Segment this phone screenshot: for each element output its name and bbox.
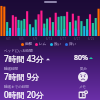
staticText: 80% xyxy=(74,53,88,63)
staticText: 6/13 xyxy=(42,37,56,41)
staticText: 6/1 xyxy=(2,37,15,41)
staticText: 睡眠時間 xyxy=(4,67,18,71)
staticText: 7時間 43分 xyxy=(4,53,44,64)
staticText: 覚醒 xyxy=(25,42,32,46)
button[interactable]: 深い xyxy=(65,42,77,46)
staticText: 睡眠までの時間 xyxy=(4,85,29,89)
button[interactable]: 浅い xyxy=(50,42,62,46)
staticText: 気分 xyxy=(80,67,87,71)
staticText: 6/25 xyxy=(84,37,98,41)
button[interactable]: 覚醒 xyxy=(21,42,32,46)
staticText: メモ xyxy=(79,85,87,89)
staticText: 深い xyxy=(69,42,77,46)
staticText: 7時間 9分 xyxy=(4,71,40,82)
staticText: 6/5 xyxy=(15,37,28,41)
button[interactable]: 睡眠までの時間 xyxy=(4,85,44,100)
staticText: 浅い xyxy=(54,42,62,46)
button[interactable]: ベッドにいる時間 xyxy=(4,49,50,64)
button[interactable]: レム xyxy=(35,42,47,46)
staticText: 6/17 xyxy=(56,37,70,41)
staticText: レム xyxy=(39,42,47,46)
staticText: ベッドにいる時間 xyxy=(4,49,33,53)
button[interactable]: Mood xyxy=(78,72,88,82)
staticText: 6/9 xyxy=(28,37,42,41)
button[interactable]: 睡眠時間 xyxy=(4,67,40,82)
button[interactable]: Memo xyxy=(78,90,88,100)
staticText: 0時間 20分 xyxy=(4,89,44,100)
staticText: 6/21 xyxy=(70,37,84,41)
